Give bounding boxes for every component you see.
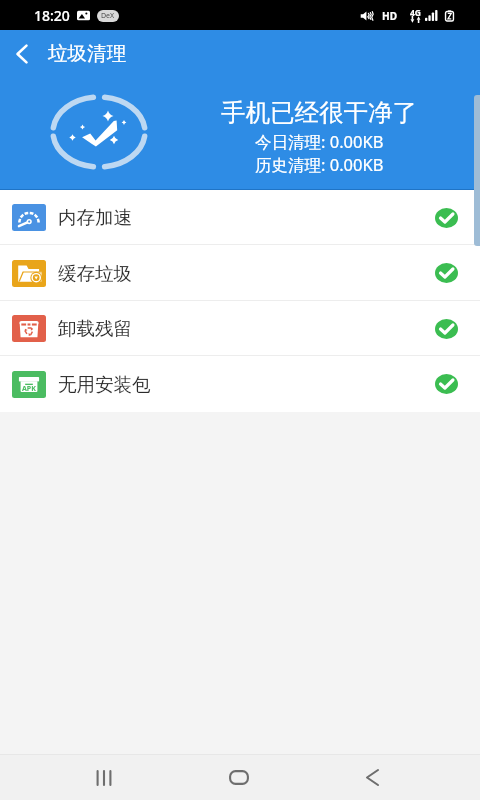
staticText: 缓存垃圾 [58, 262, 132, 285]
staticText: DeX [101, 11, 115, 21]
button[interactable]: APK [0, 356, 480, 412]
staticText: 无用安装包 [58, 373, 151, 396]
button[interactable]: Recent apps [76, 755, 132, 800]
button[interactable]: Back [344, 755, 400, 800]
staticText: 手机已经很干净了 [221, 97, 417, 128]
staticText: 历史清理: 0.00KB [255, 153, 384, 176]
staticText: 卸载残留 [58, 317, 132, 340]
button[interactable]: 内存加速 [0, 190, 480, 245]
staticText: 4G [410, 7, 422, 19]
button[interactable]: 缓存垃圾 [0, 245, 480, 301]
staticText: 今日清理: 0.00KB [255, 130, 384, 153]
staticText: 18:20 [34, 6, 70, 25]
staticText: HD [382, 9, 397, 23]
staticText: APK [22, 384, 36, 394]
staticText: 内存加速 [58, 206, 132, 229]
button[interactable]: Home [211, 755, 267, 800]
button[interactable]: 卸载残留 [0, 301, 480, 356]
staticText: 垃圾清理 [48, 41, 126, 66]
button[interactable]: Back [0, 30, 44, 78]
